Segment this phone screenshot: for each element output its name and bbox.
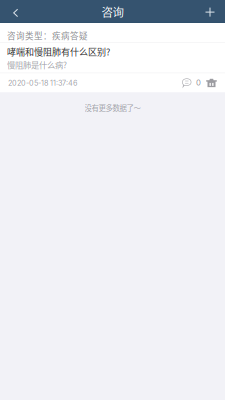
staticText: 慢阻肺是什么病? [7, 59, 67, 71]
button[interactable]: Delete [206, 78, 225, 87]
staticText: 没有更多数据了～ [84, 102, 140, 113]
button[interactable]: Back [0, 0, 29, 23]
staticText: 咨询类型：疾病答疑 [7, 29, 88, 42]
button[interactable]: New consultation [195, 0, 225, 23]
button[interactable]: Replies [182, 78, 206, 87]
staticText: 0 [196, 78, 201, 87]
staticText: 2020-05-18 11:37:46 [8, 79, 78, 88]
staticText: 哮喘和慢阻肺有什么区别? [7, 45, 110, 58]
staticText: 咨询 [101, 3, 123, 20]
button[interactable]: 咨询类型：疾病答疑 [0, 23, 225, 92]
